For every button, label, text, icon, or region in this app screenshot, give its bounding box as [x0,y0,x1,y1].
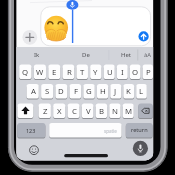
button[interactable]: B [96,104,107,118]
button[interactable]: H [97,84,108,98]
staticText: M [125,106,133,117]
staticText: T [80,67,85,78]
staticText: D [58,86,64,97]
button[interactable]: F [70,84,82,98]
staticText: K [126,86,131,97]
button[interactable]: W [34,65,46,79]
button[interactable]: Y [90,65,101,79]
button[interactable]: T [76,65,88,79]
staticText: Ik [34,51,40,59]
button[interactable] [29,145,39,155]
button[interactable]: R [63,65,75,79]
button[interactable]: àA [140,49,154,61]
button[interactable]: S [41,84,53,98]
staticText: spatie [104,128,117,134]
button[interactable] [18,104,34,118]
button[interactable]: G [83,84,94,98]
staticText: J [114,86,117,97]
button[interactable]: X [53,104,65,118]
staticText: G [86,86,92,97]
staticText: return [131,126,148,134]
button[interactable]: U [104,65,115,79]
staticText: Y [93,67,98,78]
staticText: C [72,106,77,117]
button[interactable] [138,31,149,42]
staticText: Het [121,51,131,59]
button[interactable]: Z [39,104,51,118]
button[interactable]: V [82,104,94,118]
staticText: A [31,86,36,97]
button[interactable]: return [126,123,153,137]
staticText: S [45,86,50,97]
button[interactable]: I [117,65,128,79]
button[interactable]: Het [112,49,139,61]
staticText: V [86,106,91,117]
staticText: I [121,67,124,78]
button[interactable]: C [68,104,80,118]
button[interactable]: D [55,84,67,98]
button[interactable] [22,30,37,45]
staticText: H [100,86,106,97]
staticText: F [74,86,79,97]
button[interactable]: M [123,104,134,118]
button[interactable] [132,140,148,156]
staticText: N [112,106,118,117]
button[interactable]: De [72,49,99,61]
staticText: P [146,67,151,78]
staticText: Q [22,67,29,78]
staticText: R [67,67,72,78]
button[interactable] [49,123,121,137]
staticText: X [57,106,62,117]
button[interactable]: L [136,84,147,98]
staticText: O [132,67,139,78]
button[interactable]: J [110,84,121,98]
staticText: L [139,86,144,97]
button[interactable]: P [143,65,153,79]
button[interactable]: E [48,65,60,79]
staticText: B [99,106,105,117]
staticText: 123 [26,127,36,134]
staticText: Z [43,106,48,117]
staticText: E [52,67,57,78]
button[interactable]: 123 [17,123,45,137]
button[interactable]: Q [19,65,31,79]
staticText: De [82,51,90,59]
staticText: àA [144,51,151,59]
button[interactable]: Ik [23,49,50,61]
button[interactable]: O [130,65,141,79]
button[interactable]: N [109,104,120,118]
button[interactable] [138,104,153,118]
button[interactable]: K [123,84,134,98]
staticText: W [36,67,44,78]
button[interactable]: A [27,84,39,98]
staticText: U [107,67,113,78]
